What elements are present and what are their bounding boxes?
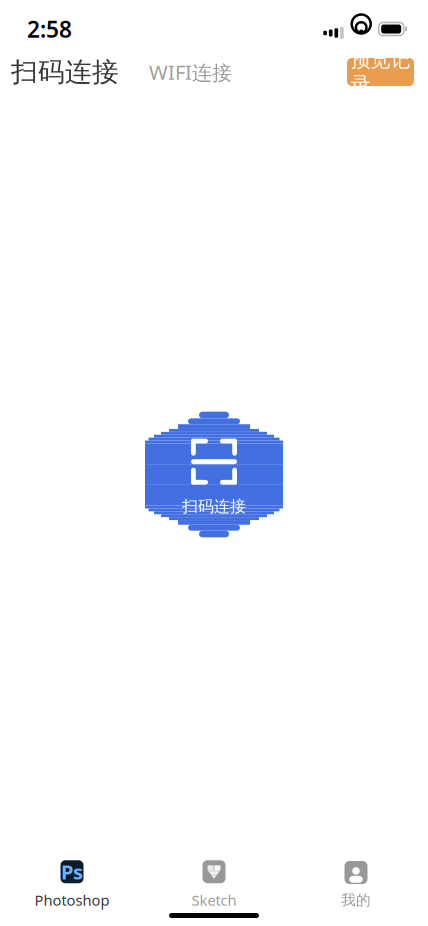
button[interactable]: 预览记录 — [347, 58, 414, 86]
staticText: WIFI连接 — [149, 59, 232, 85]
staticText: Ps — [61, 858, 83, 885]
staticText: 扫码连接 — [182, 497, 246, 516]
staticText: Sketch — [191, 890, 236, 910]
staticText: 扫码连接 — [11, 56, 119, 88]
staticText: 预览记录 — [350, 47, 410, 96]
button[interactable]: 扫码连接 — [11, 52, 119, 92]
staticText: 我的 — [341, 891, 371, 909]
staticText: 2:58 — [27, 14, 72, 44]
button[interactable]: 扫码连接 — [145, 396, 283, 552]
button[interactable]: Sketch — [143, 857, 285, 913]
button[interactable]: WIFI连接 — [119, 53, 232, 91]
button[interactable]: Ps — [1, 857, 143, 913]
button[interactable]: 我的 — [285, 857, 427, 913]
staticText: Photoshop — [34, 890, 109, 910]
